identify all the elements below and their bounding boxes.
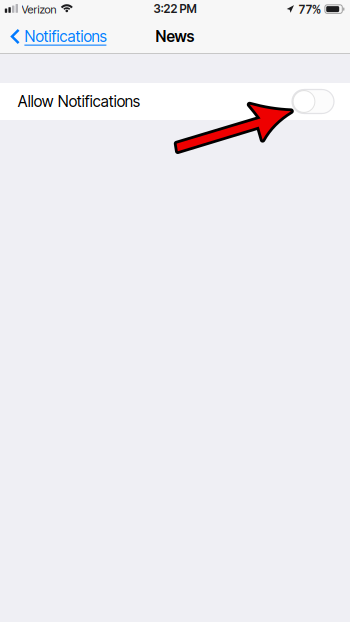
staticText: 3:22 PM	[153, 2, 196, 16]
staticText: Allow Notifications	[18, 92, 140, 111]
staticText: Notifications	[24, 27, 106, 46]
button[interactable]: Back to Notifications	[0, 20, 112, 53]
button[interactable]: Allow Notifications	[0, 83, 350, 120]
staticText: News	[155, 27, 194, 46]
staticText: 77%	[299, 2, 321, 17]
staticText: Verizon	[22, 3, 57, 16]
